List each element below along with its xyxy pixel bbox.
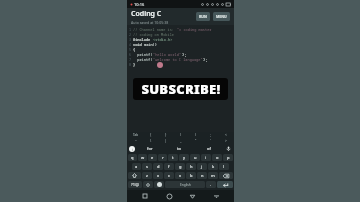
staticText: "c coding master — [177, 27, 212, 32]
button[interactable]: a — [132, 163, 141, 170]
button[interactable]: u — [190, 154, 200, 161]
button[interactable]: m — [208, 172, 218, 179]
staticText: \ — [150, 139, 152, 143]
button[interactable]: h — [186, 163, 196, 170]
staticText: "hello world" — [153, 52, 182, 57]
button[interactable]: ; — [203, 132, 218, 138]
button[interactable]: < — [218, 132, 233, 138]
staticText: 1 — [129, 27, 132, 32]
staticText: | — [165, 139, 167, 143]
button[interactable]: d — [153, 163, 163, 170]
staticText: English — [180, 183, 191, 187]
button[interactable]: | — [158, 138, 173, 144]
button[interactable]: \ — [143, 138, 158, 144]
staticText: printf( — [133, 57, 153, 62]
staticText: // Channel name is: — [133, 27, 177, 32]
button[interactable]: y — [179, 154, 189, 161]
staticText: " — [195, 139, 197, 143]
staticText: ) — [195, 133, 196, 137]
button[interactable]: Home — [164, 191, 174, 201]
staticText: d — [157, 164, 160, 169]
button[interactable]: } — [158, 132, 173, 138]
staticText: > — [225, 139, 227, 143]
button[interactable]: ( — [173, 132, 188, 138]
button[interactable]: c — [164, 172, 174, 179]
staticText: v — [179, 173, 182, 178]
staticText: p — [227, 155, 230, 160]
staticText: _ — [180, 139, 182, 143]
button[interactable]: " — [188, 138, 203, 144]
button[interactable]: ' — [203, 138, 218, 144]
button[interactable]: English — [165, 181, 205, 188]
button[interactable]: Settings — [143, 181, 153, 188]
button[interactable]: l — [219, 163, 229, 170]
button[interactable]: Voice input — [224, 144, 232, 153]
button[interactable]: q — [128, 154, 137, 161]
button[interactable]: . — [206, 181, 216, 188]
button[interactable]: j — [197, 163, 207, 170]
button[interactable]: Back — [187, 191, 197, 201]
button[interactable]: Hide keyboard — [211, 191, 221, 201]
staticText: ; — [210, 133, 211, 137]
staticText: Auto saved at 10:05:38 — [131, 20, 169, 25]
staticText: { — [133, 47, 136, 52]
staticText: i — [205, 155, 207, 160]
button[interactable]: Backspace — [219, 172, 233, 179]
button[interactable]: g — [175, 163, 185, 170]
button[interactable]: Recents — [140, 191, 150, 201]
button[interactable]: s — [142, 163, 152, 170]
staticText: u — [194, 155, 197, 160]
button[interactable]: ) — [188, 132, 203, 138]
button[interactable]: o — [212, 154, 222, 161]
button[interactable]: SUBSCRIBE! — [133, 78, 228, 100]
button[interactable]: { — [143, 132, 158, 138]
staticText: 5 — [129, 47, 132, 52]
staticText: SUBSCRIBE! — [141, 80, 221, 98]
button[interactable]: _ — [173, 138, 188, 144]
button[interactable]: of — [194, 144, 224, 153]
button[interactable]: i — [201, 154, 211, 161]
staticText: 6 — [129, 52, 132, 57]
button[interactable]: e — [148, 154, 157, 161]
button[interactable]: b — [186, 172, 196, 179]
button[interactable]: f — [164, 163, 174, 170]
staticText: main() — [144, 42, 157, 47]
staticText: < — [225, 133, 227, 137]
button[interactable]: > — [218, 138, 233, 144]
staticText: Tab — [133, 133, 139, 137]
button[interactable]: k — [208, 163, 218, 170]
button[interactable]: v — [175, 172, 185, 179]
button[interactable]: Assistant — [129, 146, 135, 152]
staticText: n — [201, 173, 204, 178]
button[interactable]: z — [142, 172, 152, 179]
button[interactable]: Enter — [217, 181, 233, 188]
button[interactable]: x — [153, 172, 163, 179]
button[interactable]: MENU — [213, 12, 230, 21]
button[interactable]: n — [197, 172, 207, 179]
button[interactable]: RUN — [196, 12, 210, 21]
button[interactable]: Tab — [128, 132, 143, 138]
staticText: y — [183, 155, 186, 160]
button[interactable]: to — [164, 144, 194, 153]
staticText: x — [157, 173, 160, 178]
staticText: m — [211, 173, 215, 178]
staticText: 7 — [129, 57, 132, 62]
button[interactable]: Emoji — [154, 181, 164, 188]
button[interactable]: w — [138, 154, 147, 161]
staticText: e — [151, 155, 154, 160]
button[interactable]: for — [135, 144, 164, 153]
staticText: 4 — [129, 42, 132, 47]
button[interactable]: t — [168, 154, 178, 161]
staticText: ); — [182, 52, 187, 57]
button[interactable]: ~ — [128, 138, 143, 144]
button[interactable]: Shift — [128, 172, 141, 179]
staticText: #include — [133, 37, 153, 42]
staticText: 8 — [129, 62, 132, 67]
button[interactable]: p — [223, 154, 233, 161]
staticText: of — [207, 146, 211, 151]
button[interactable]: r — [158, 154, 167, 161]
staticText: for — [147, 146, 153, 151]
staticText: . — [210, 182, 212, 187]
button[interactable]: ?1☺ — [128, 181, 142, 188]
staticText: to — [177, 146, 181, 151]
